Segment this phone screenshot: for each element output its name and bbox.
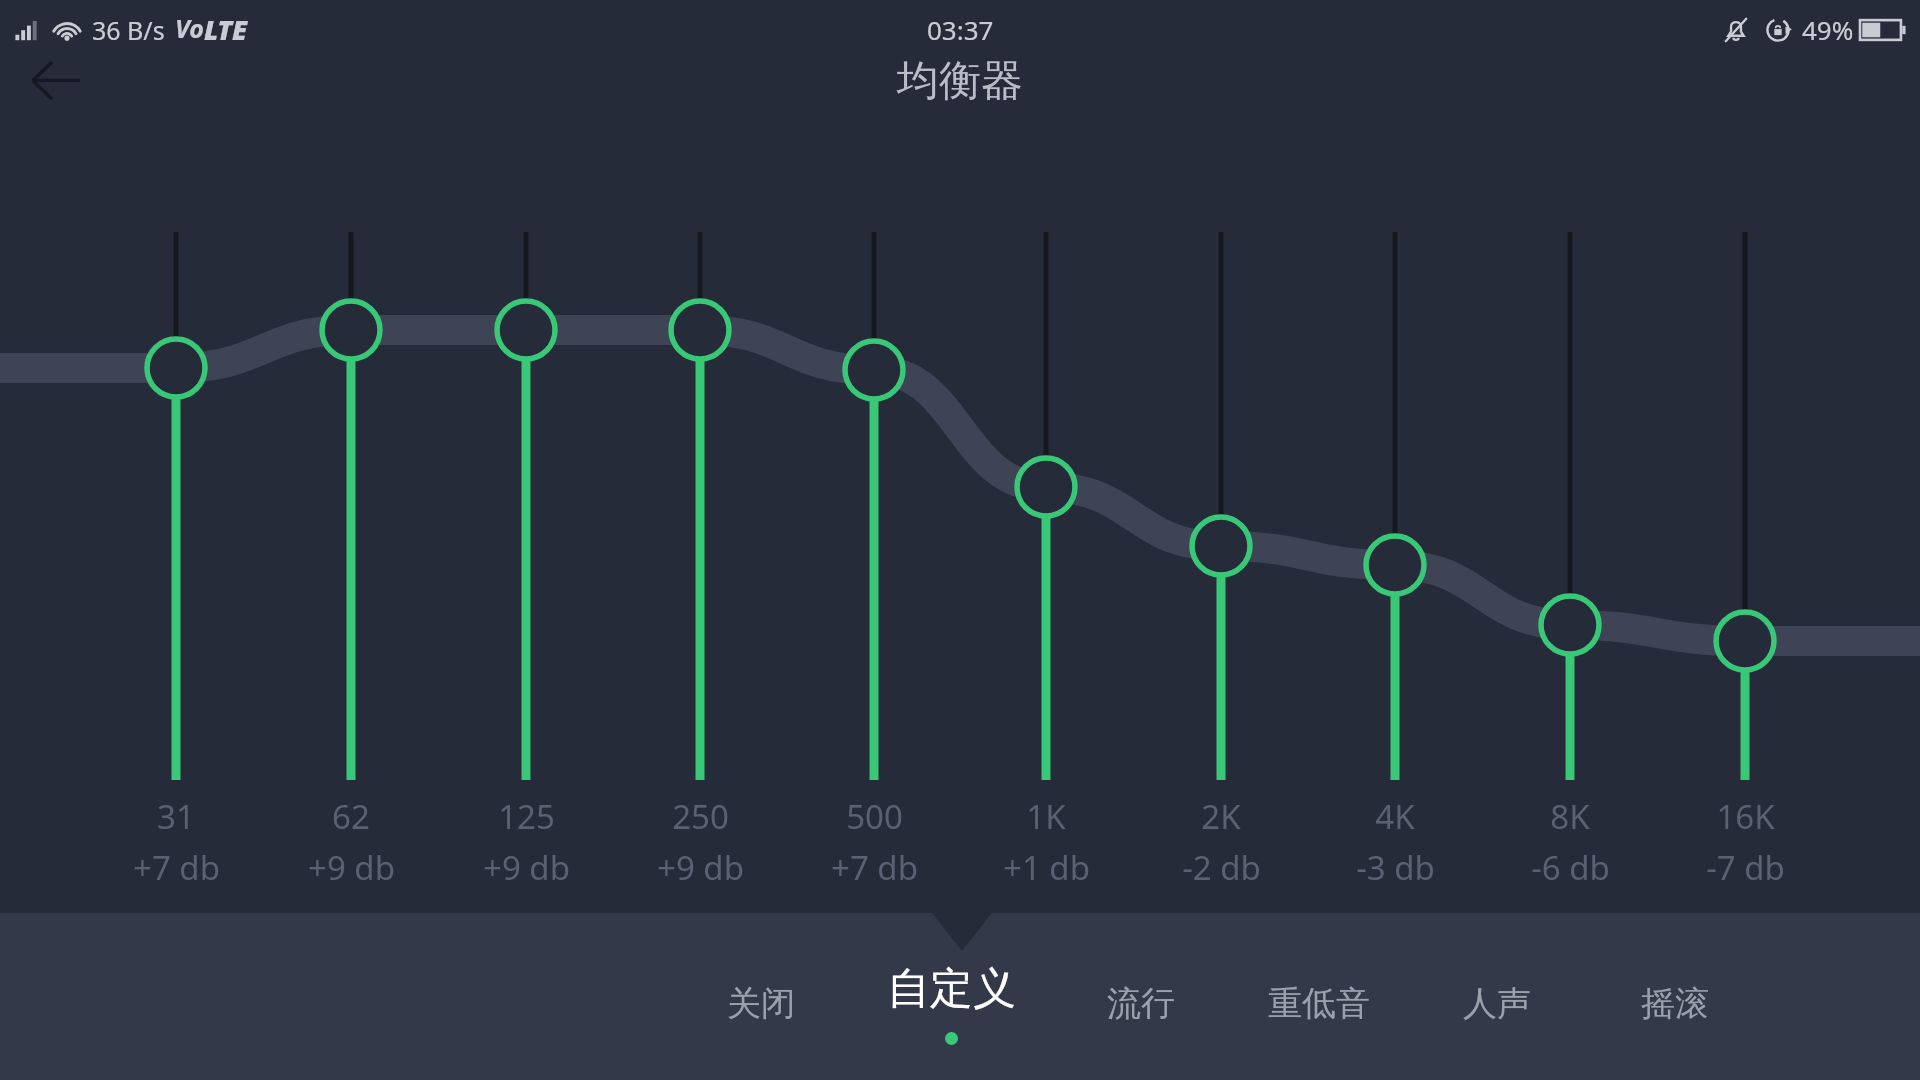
button[interactable]: 62 xyxy=(256,794,446,890)
staticText: +9 db xyxy=(308,845,395,890)
button[interactable]: 500 xyxy=(779,794,969,890)
staticText: -7 db xyxy=(1706,845,1785,890)
staticText: 03:37 xyxy=(927,12,994,47)
button[interactable]: 关闭 xyxy=(672,943,850,1063)
staticText: 31 xyxy=(157,794,195,839)
button[interactable]: 自定义 xyxy=(850,943,1052,1063)
staticText: -3 db xyxy=(1356,845,1435,890)
staticText: 重低音 xyxy=(1268,982,1370,1025)
staticText: 自定义 xyxy=(887,962,1016,1016)
staticText: 49% xyxy=(1802,12,1854,47)
button[interactable]: 摇滚 xyxy=(1586,943,1764,1063)
button[interactable]: 1K xyxy=(951,794,1141,890)
button[interactable]: 125 xyxy=(431,794,621,890)
staticText: 2K xyxy=(1201,794,1241,839)
staticText: -6 db xyxy=(1531,845,1610,890)
staticText: +9 db xyxy=(483,845,570,890)
button[interactable]: 2K xyxy=(1126,794,1316,890)
staticText: +7 db xyxy=(133,845,220,890)
button[interactable]: 250 xyxy=(605,794,795,890)
staticText: Vo xyxy=(175,11,204,45)
staticText: 36 B/s xyxy=(92,13,165,47)
button[interactable]: 人声 xyxy=(1408,943,1586,1063)
button[interactable]: Back xyxy=(18,39,92,113)
button[interactable]: 重低音 xyxy=(1230,943,1408,1063)
button[interactable]: 流行 xyxy=(1052,943,1230,1063)
staticText: 人声 xyxy=(1463,982,1531,1025)
staticText: -2 db xyxy=(1182,845,1261,890)
staticText: +7 db xyxy=(831,845,918,890)
staticText: 摇滚 xyxy=(1641,982,1709,1025)
staticText: +9 db xyxy=(657,845,744,890)
button[interactable]: 4K xyxy=(1300,794,1490,890)
staticText: 250 xyxy=(672,794,729,839)
staticText: 16K xyxy=(1716,794,1775,839)
staticText: 500 xyxy=(846,794,903,839)
button[interactable]: 16K xyxy=(1650,794,1840,890)
staticText: 8K xyxy=(1550,794,1590,839)
staticText: 1K xyxy=(1026,794,1066,839)
staticText: 125 xyxy=(498,794,555,839)
button[interactable]: 8K xyxy=(1475,794,1665,890)
button[interactable]: 31 xyxy=(81,794,271,890)
staticText: LTE xyxy=(204,11,248,48)
staticText: 4K xyxy=(1375,794,1415,839)
staticText: 均衡器 xyxy=(897,55,1023,108)
staticText: +1 db xyxy=(1003,845,1090,890)
staticText: 关闭 xyxy=(727,982,795,1025)
staticText: 62 xyxy=(332,794,370,839)
staticText: 流行 xyxy=(1107,982,1175,1025)
